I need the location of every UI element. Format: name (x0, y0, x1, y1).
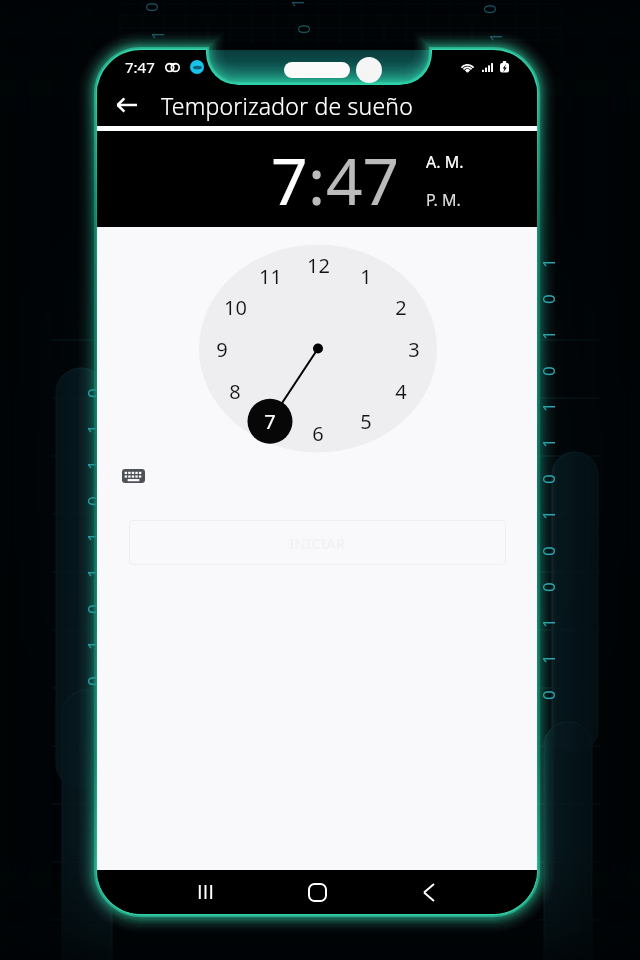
staticText: 9 (216, 336, 228, 363)
button[interactable]: 12 (301, 251, 335, 279)
button[interactable]: Recientes (179, 870, 231, 914)
staticText: 1 (537, 618, 559, 628)
staticText: 1 (537, 510, 559, 520)
staticText: 1 (537, 330, 559, 340)
staticText: 7:47 (125, 57, 155, 77)
button[interactable]: A. M. (426, 151, 464, 173)
staticText: 12 (307, 252, 330, 279)
button[interactable]: 6 (301, 419, 335, 447)
staticText: 4 (395, 378, 407, 405)
staticText: : (308, 137, 326, 224)
staticText: 10 (224, 294, 247, 321)
staticText: 1 (82, 460, 104, 470)
staticText: 0 (82, 604, 104, 614)
staticText: 0 (537, 294, 559, 304)
button[interactable]: 7 (253, 407, 287, 435)
button[interactable]: 2 (384, 293, 418, 321)
staticText: A. M. (426, 151, 464, 173)
staticText: 0 (82, 388, 104, 398)
staticText: 0 (82, 496, 104, 506)
staticText: 1 (484, 32, 506, 42)
button[interactable]: 47 (326, 137, 400, 224)
button[interactable]: 8 (218, 377, 252, 405)
staticText: 8 (229, 378, 241, 405)
button[interactable]: Inicio (291, 870, 343, 914)
staticText: 1 (286, 0, 308, 8)
staticText: 1 (146, 30, 168, 40)
button[interactable]: Atrás (105, 84, 149, 126)
staticText: 0 (537, 546, 559, 556)
staticText: 0 (478, 4, 500, 14)
button[interactable]: 4 (384, 377, 418, 405)
staticText: 5 (360, 408, 372, 435)
staticText: 0 (292, 24, 314, 34)
staticText: 1 (537, 258, 559, 268)
staticText: 0 (537, 582, 559, 592)
staticText: 1 (82, 640, 104, 650)
button[interactable]: 11 (253, 262, 287, 290)
button[interactable]: 5 (349, 407, 383, 435)
staticText: 1 (360, 263, 372, 290)
staticText: 6 (312, 420, 324, 447)
staticText: 1 (82, 424, 104, 434)
staticText: 1 (82, 532, 104, 542)
button[interactable]: Atrás (403, 870, 455, 914)
staticText: 1 (537, 402, 559, 412)
staticText: P. M. (426, 189, 461, 211)
staticText: 0 (537, 474, 559, 484)
staticText: 3 (408, 336, 420, 363)
staticText: Temporizador de sueño (161, 90, 413, 121)
staticText: 1 (537, 654, 559, 664)
staticText: 7 (264, 408, 276, 435)
staticText: 0 (537, 690, 559, 700)
staticText: 0 (537, 366, 559, 376)
staticText: 0 (82, 676, 104, 686)
staticText: 1 (537, 438, 559, 448)
button[interactable]: P. M. (426, 189, 461, 211)
staticText: 2 (395, 294, 407, 321)
button[interactable]: 7 (271, 137, 308, 224)
button[interactable]: 3 (397, 335, 431, 363)
button[interactable]: 10 (218, 293, 252, 321)
staticText: 1 (82, 568, 104, 578)
staticText: 11 (259, 263, 282, 290)
button[interactable]: Cambiar a entrada de texto (113, 458, 153, 494)
staticText: 0 (140, 2, 162, 12)
button[interactable]: 9 (205, 335, 239, 363)
button[interactable]: 1 (349, 262, 383, 290)
